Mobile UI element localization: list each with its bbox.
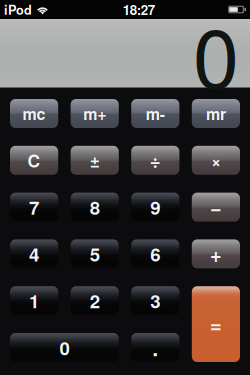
staticText: ± [90,148,100,173]
button[interactable]: 3 [131,286,179,315]
button[interactable]: mr [192,99,240,128]
button[interactable]: ÷ [131,146,179,175]
staticText: m- [146,102,165,125]
button[interactable]: 0 [10,333,119,362]
staticText: ÷ [150,147,161,174]
staticText: 1 [29,287,39,314]
button[interactable]: 5 [71,239,119,268]
button[interactable]: m- [131,99,179,128]
button[interactable]: + [192,239,240,268]
button[interactable]: 8 [71,193,119,222]
staticText: = [210,310,222,338]
button[interactable]: 1 [10,286,58,315]
staticText: − [210,193,222,221]
staticText: 18:27 [123,0,155,19]
staticText: 5 [90,240,100,267]
staticText: mr [206,102,226,125]
staticText: 7 [29,194,39,220]
staticText: mc [23,102,46,125]
staticText: m+ [83,102,106,125]
button[interactable]: 7 [10,193,58,222]
button[interactable]: 2 [71,286,119,315]
button[interactable]: m+ [71,99,119,128]
staticText: 0 [193,0,239,112]
staticText: + [210,240,222,268]
button[interactable]: ± [71,146,119,175]
staticText: C [28,148,41,173]
button[interactable]: mc [10,99,58,128]
staticText: 8 [90,194,100,220]
button[interactable]: C [10,146,58,175]
staticText: 4 [29,240,39,267]
button[interactable]: × [192,146,240,175]
button[interactable]: 6 [131,239,179,268]
button[interactable]: 9 [131,193,179,222]
button[interactable]: − [192,193,240,222]
staticText: . [152,332,158,363]
staticText: × [211,148,221,173]
staticText: 6 [150,240,160,267]
staticText: 0 [59,334,69,361]
staticText: iPod [4,0,32,18]
button[interactable]: 4 [10,239,58,268]
staticText: 9 [150,194,160,220]
staticText: 2 [90,287,100,314]
button[interactable]: = [192,286,240,362]
button[interactable]: . [131,333,179,362]
staticText: 3 [150,287,160,314]
